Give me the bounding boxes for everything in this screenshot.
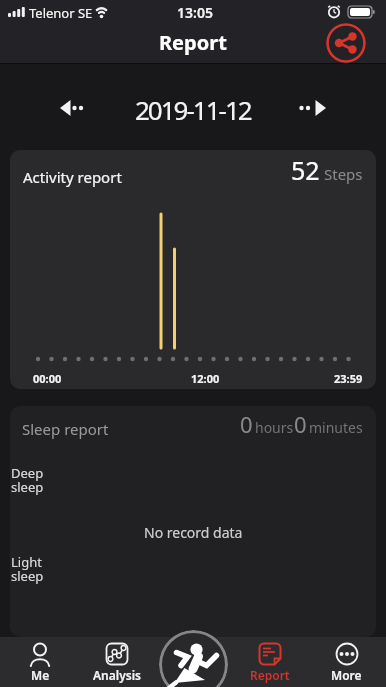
staticText: No record data [144,523,243,542]
button[interactable]: More [308,637,385,687]
button[interactable]: Report [231,637,308,687]
staticText: 0 [294,409,307,439]
button[interactable] [159,630,228,687]
staticText: minutes [309,418,363,437]
button[interactable]: Me [2,637,78,687]
staticText: Sleep report [22,419,109,439]
button[interactable] [326,23,366,63]
staticText: Report [250,667,290,683]
staticText: 13:05 [177,3,213,22]
staticText: Telenor SE [29,4,93,22]
staticText: 52 [291,153,320,187]
staticText: 00:00 [33,371,62,386]
staticText: 2019-11-12 [135,92,251,127]
staticText: 23:59 [334,371,363,386]
staticText: Report [159,29,227,56]
staticText: Me [31,667,50,683]
staticText: hours [255,418,294,437]
button[interactable] [292,84,336,132]
staticText: More [331,667,362,683]
button[interactable] [50,84,94,132]
staticText: Deep sleep [11,464,44,496]
staticText: 12:00 [191,371,220,386]
staticText: Analysis [93,667,141,683]
staticText: Activity report [23,167,122,187]
staticText: 0 [240,409,253,439]
staticText: Steps [324,164,363,184]
button[interactable]: Analysis [78,637,155,687]
staticText: Light sleep [11,553,44,585]
